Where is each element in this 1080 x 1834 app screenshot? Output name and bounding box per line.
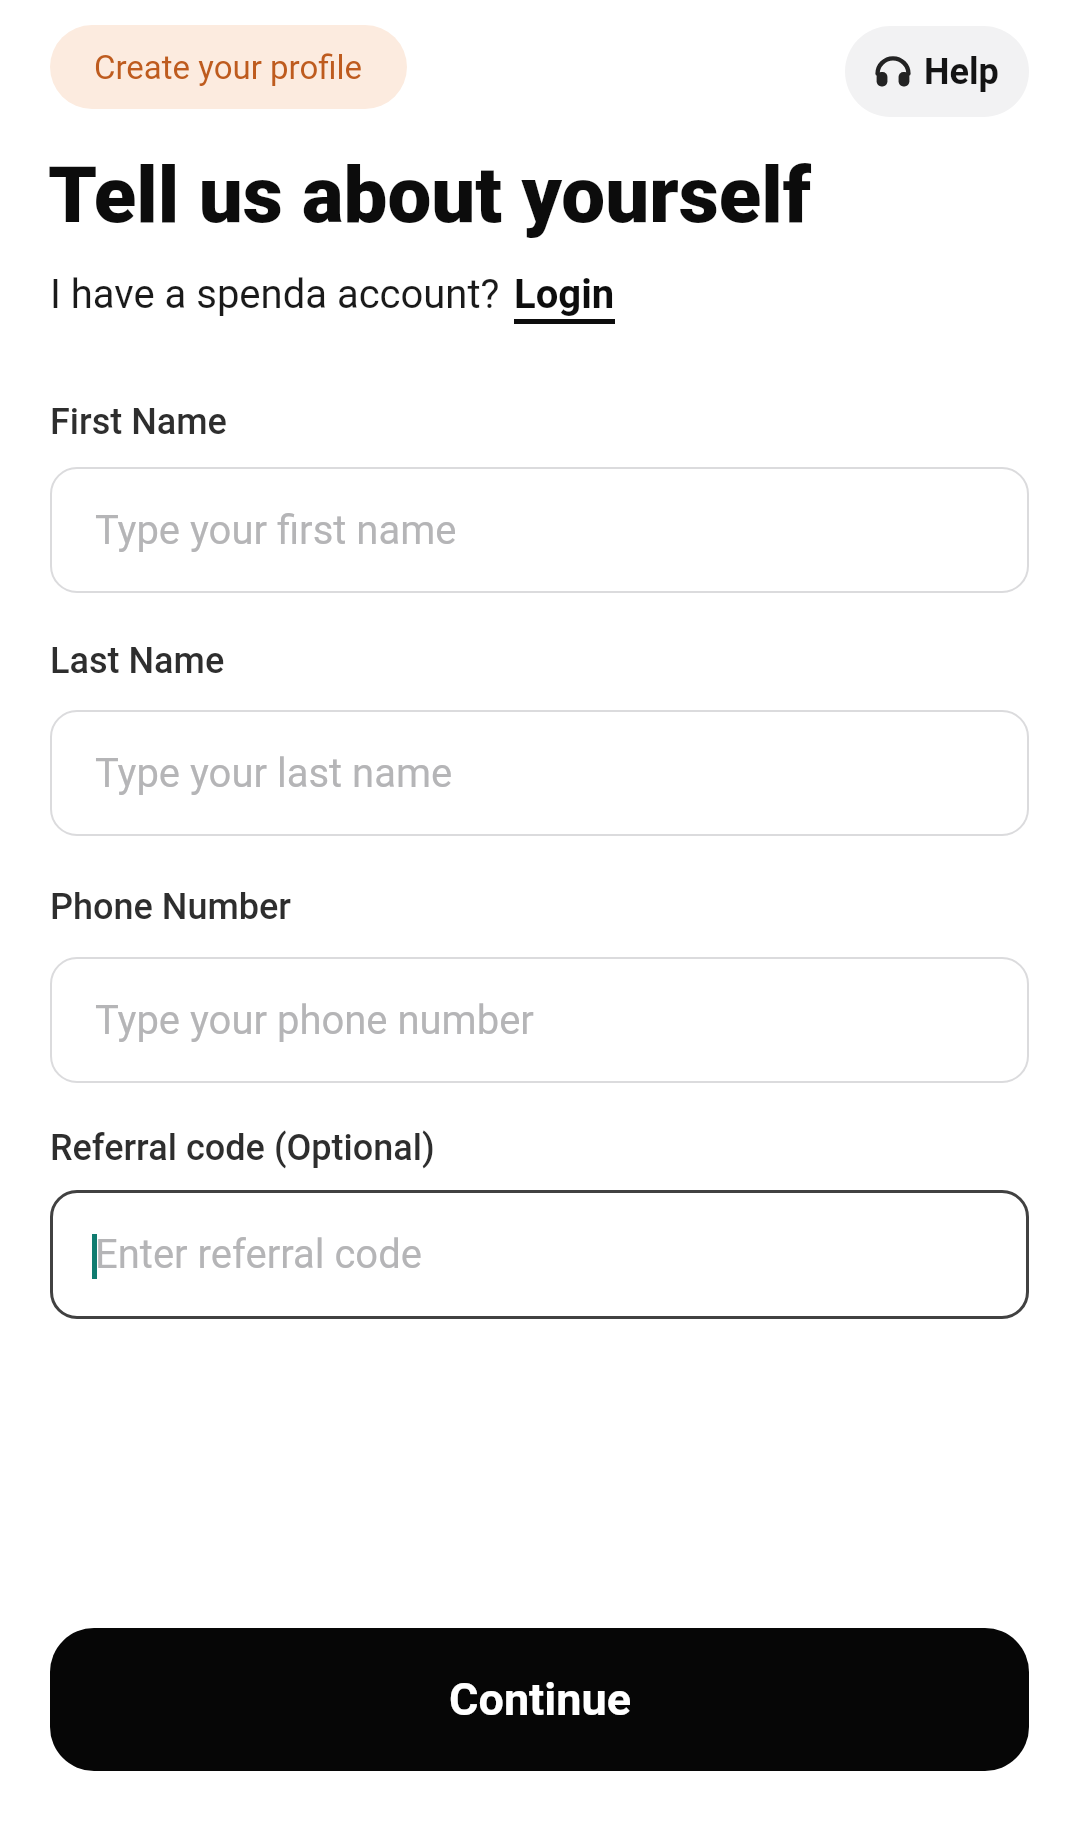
staticText: Enter referral code xyxy=(95,1231,422,1278)
staticText: Continue xyxy=(449,1673,631,1726)
staticText: Phone Number xyxy=(50,886,291,928)
staticText: Tell us about yourself xyxy=(48,150,812,241)
staticText: Login xyxy=(514,271,615,318)
staticText: Type your last name xyxy=(95,750,453,797)
staticText: First Name xyxy=(50,401,227,443)
staticText: Help xyxy=(924,51,999,93)
staticText: I have a spenda account? xyxy=(50,271,500,318)
staticText: Last Name xyxy=(50,640,225,682)
staticText: Create your profile xyxy=(94,48,363,87)
staticText: Type your first name xyxy=(95,507,457,554)
staticText: Type your phone number xyxy=(95,997,534,1044)
staticText: Referral code (Optional) xyxy=(50,1127,435,1169)
